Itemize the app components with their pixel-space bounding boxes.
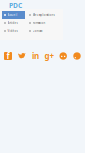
button[interactable]: PDC (9, 1, 22, 10)
button[interactable]: Contact (27, 27, 60, 35)
staticText: in (32, 51, 39, 61)
button[interactable]: Twitter (18, 52, 26, 60)
staticText: Formation (32, 21, 45, 25)
button[interactable]: Accueil (2, 11, 25, 19)
staticText: PDC (9, 1, 22, 10)
staticText: Mes explorations (32, 13, 54, 17)
button[interactable]: RSS feed (73, 52, 81, 60)
button[interactable]: Articles (2, 19, 25, 27)
staticText: g+ (44, 51, 54, 61)
staticText: Contact (32, 29, 42, 33)
button[interactable]: Mes explorations (27, 11, 60, 19)
staticText: Accueil (7, 13, 17, 17)
button[interactable]: Formation (27, 19, 60, 27)
button[interactable]: LinkedIn (32, 52, 40, 60)
button[interactable]: Facebook (4, 52, 12, 60)
button[interactable]: Google Plus (45, 52, 53, 60)
staticText: Articles (7, 21, 17, 25)
staticText: Vidéos (7, 29, 17, 33)
button[interactable]: Vidéos (2, 27, 25, 35)
staticText: f (6, 51, 9, 61)
button[interactable]: GitHub (59, 52, 67, 60)
